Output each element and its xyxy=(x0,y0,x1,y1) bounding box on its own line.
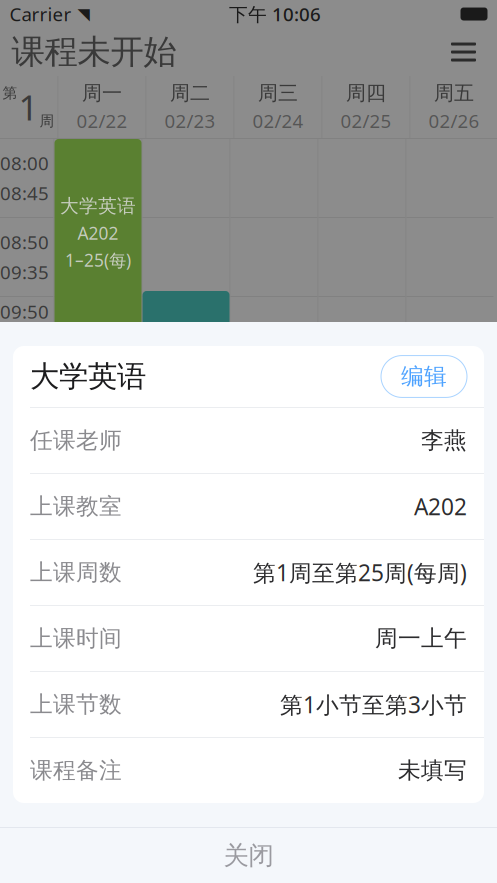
staticText: 课程未开始 xyxy=(11,31,176,72)
staticText: 08:45 xyxy=(0,180,49,205)
staticText: A202 xyxy=(77,221,118,244)
staticText: 周 xyxy=(39,112,54,130)
staticText: ◥ xyxy=(77,5,89,23)
staticText: 02/23 xyxy=(164,108,215,133)
staticText: 周一上午 xyxy=(375,625,467,652)
staticText: 02/26 xyxy=(428,108,479,133)
button[interactable]: 菜单 xyxy=(441,30,485,74)
staticText: 大学英语 xyxy=(60,194,136,217)
button[interactable]: 关闭 xyxy=(0,828,497,883)
staticText: 李燕 xyxy=(421,427,467,454)
staticText: 课程备注 xyxy=(30,757,122,784)
staticText: 02/24 xyxy=(252,108,303,133)
staticText: 上课时间 xyxy=(30,625,122,652)
staticText: 关闭 xyxy=(223,840,273,871)
staticText: A202 xyxy=(414,491,467,521)
staticText: 大学英语 xyxy=(30,358,146,394)
staticText: 编辑 xyxy=(401,363,447,390)
button[interactable]: 编辑 xyxy=(381,356,467,397)
staticText: 周一 xyxy=(82,81,122,105)
staticText: 1 xyxy=(18,84,38,130)
staticText: 02/25 xyxy=(340,108,391,133)
staticText: 任课老师 xyxy=(30,427,122,454)
staticText: 第 xyxy=(2,84,17,102)
staticText: 1–25(每) xyxy=(65,248,131,271)
staticText: 周三 xyxy=(258,81,298,105)
staticText: 上课教室 xyxy=(30,493,122,520)
staticText: 周五 xyxy=(434,81,474,105)
staticText: 周二 xyxy=(170,81,210,105)
staticText: 下午 10:06 xyxy=(229,2,321,26)
staticText: 09:50 xyxy=(0,299,49,324)
staticText: 08:50 xyxy=(0,230,49,254)
staticText: 第1小节至第3小节 xyxy=(280,689,467,719)
staticText: 周四 xyxy=(346,81,386,105)
staticText: 第1周至第25周(每周) xyxy=(253,557,467,587)
staticText: 08:00 xyxy=(0,151,49,175)
staticText: 未填写 xyxy=(398,757,467,784)
staticText: Carrier xyxy=(9,2,71,26)
staticText: 上课周数 xyxy=(30,559,122,586)
staticText: 上课节数 xyxy=(30,691,122,718)
staticText: 02/22 xyxy=(76,108,127,133)
staticText: 09:35 xyxy=(0,259,49,284)
